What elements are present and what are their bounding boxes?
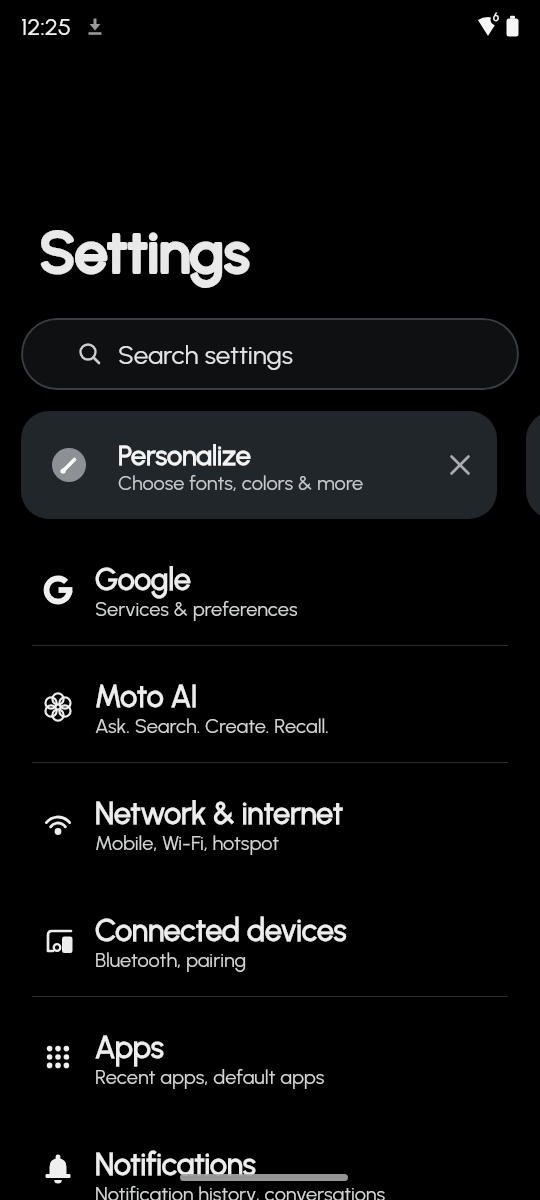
staticText: Notifications [95,1146,256,1182]
staticText: Services & preferences [95,597,298,621]
staticText: Google [95,561,191,597]
staticText: Settings [40,218,250,286]
staticText: Personalize [118,439,251,471]
button[interactable]: Google [0,532,540,649]
staticText: Ask. Search. Create. Recall. [95,714,329,738]
staticText: Notification history, conversations [95,1182,386,1200]
button[interactable] [449,454,471,476]
button[interactable]: Apps [0,1000,540,1117]
staticText: Mobile, Wi-Fi, hotspot [95,831,280,855]
button[interactable]: Connected devices [0,883,540,1000]
staticText: Apps [95,1029,164,1065]
button[interactable]: Search settings [21,318,519,390]
button[interactable] [526,411,540,519]
button[interactable]: Notifications [0,1117,540,1200]
staticText: Bluetooth, pairing [95,948,247,972]
staticText: Choose fonts, colors & more [118,471,364,495]
staticText: Recent apps, default apps [95,1065,325,1089]
staticText: Settings [40,218,250,286]
staticText: 6 [493,11,499,24]
staticText: Network & internet [95,795,343,831]
staticText: Connected devices [95,912,347,948]
button[interactable]: Moto AI [0,649,540,766]
button[interactable]: Personalize [21,411,497,519]
staticText: Moto AI [95,678,198,714]
staticText: Search settings [118,339,293,370]
staticText: 12:25 [21,12,72,41]
button[interactable] [180,1174,348,1181]
button[interactable]: Network & internet [0,766,540,883]
